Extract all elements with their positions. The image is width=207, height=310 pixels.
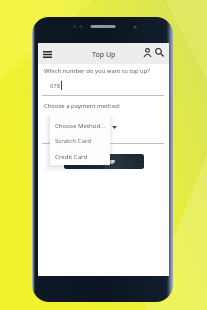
staticText: 078 [50,82,61,90]
staticText: Choose a payment method: [44,102,121,110]
button[interactable]: Scratch Card [50,132,110,147]
button[interactable]: Menu [39,47,56,62]
button[interactable]: Search [152,45,166,59]
button[interactable]: Choose Method... [50,117,110,132]
button[interactable]: Account [140,45,154,59]
staticText: Credit Card [55,152,88,160]
button[interactable]: TOP UP [64,154,144,169]
staticText: Top Up [92,50,116,60]
staticText: Choose Method... [55,121,106,129]
staticText: Scratch Card [55,136,91,144]
button[interactable]: Credit Card [50,148,110,163]
staticText: TOP UP [93,158,115,166]
staticText: Which number do you want to top up? [44,67,150,75]
